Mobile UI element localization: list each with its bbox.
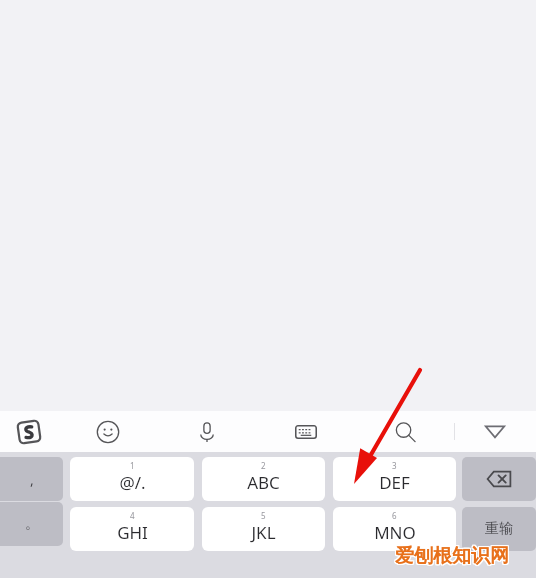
staticText: MNO [374, 521, 416, 544]
staticText: 爱刨根知识网 [395, 543, 509, 567]
button[interactable]: Hide keyboard [454, 411, 536, 452]
button[interactable]: Voice input [157, 411, 256, 452]
button[interactable]: 6 [333, 507, 456, 551]
staticText: 6 [392, 510, 397, 521]
button[interactable]: 3 [333, 457, 456, 501]
staticText: 爱刨根知识网 [396, 543, 510, 567]
staticText: @/. [119, 471, 146, 494]
staticText: 爱刨根知识网 [395, 544, 509, 568]
staticText: 1 [130, 460, 135, 471]
staticText: , [30, 470, 34, 489]
staticText: 5 [261, 510, 266, 521]
staticText: 爱刨根知识网 [396, 545, 510, 569]
staticText: ABC [247, 471, 280, 494]
staticText: 爱刨根知识网 [395, 545, 509, 569]
button[interactable]: , [0, 457, 63, 501]
button[interactable]: 4 [70, 507, 194, 551]
staticText: DEF [379, 471, 410, 494]
button[interactable]: Emoji [58, 411, 157, 452]
staticText: 爱刨根知识网 [394, 544, 508, 568]
button[interactable]: 重输 [462, 507, 536, 551]
button[interactable]: 5 [202, 507, 325, 551]
staticText: 。 [25, 515, 39, 533]
button[interactable]: 1 [70, 457, 194, 501]
staticText: 爱刨根知识网 [394, 545, 508, 569]
staticText: 爱刨根知识网 [394, 543, 508, 567]
staticText: JKL [251, 521, 276, 544]
button[interactable]: Keyboard layout [256, 411, 355, 452]
staticText: 4 [130, 510, 135, 521]
button[interactable]: 。 [0, 502, 63, 546]
staticText: 重输 [485, 520, 513, 538]
button[interactable]: Sogou input method [0, 411, 58, 452]
staticText: 爱刨根知识网 [396, 544, 510, 568]
button[interactable]: 2 [202, 457, 325, 501]
staticText: 3 [392, 460, 397, 471]
staticText: 2 [261, 460, 266, 471]
button[interactable]: Backspace [462, 457, 536, 501]
button[interactable]: Search [355, 411, 454, 452]
staticText: GHI [117, 521, 148, 544]
